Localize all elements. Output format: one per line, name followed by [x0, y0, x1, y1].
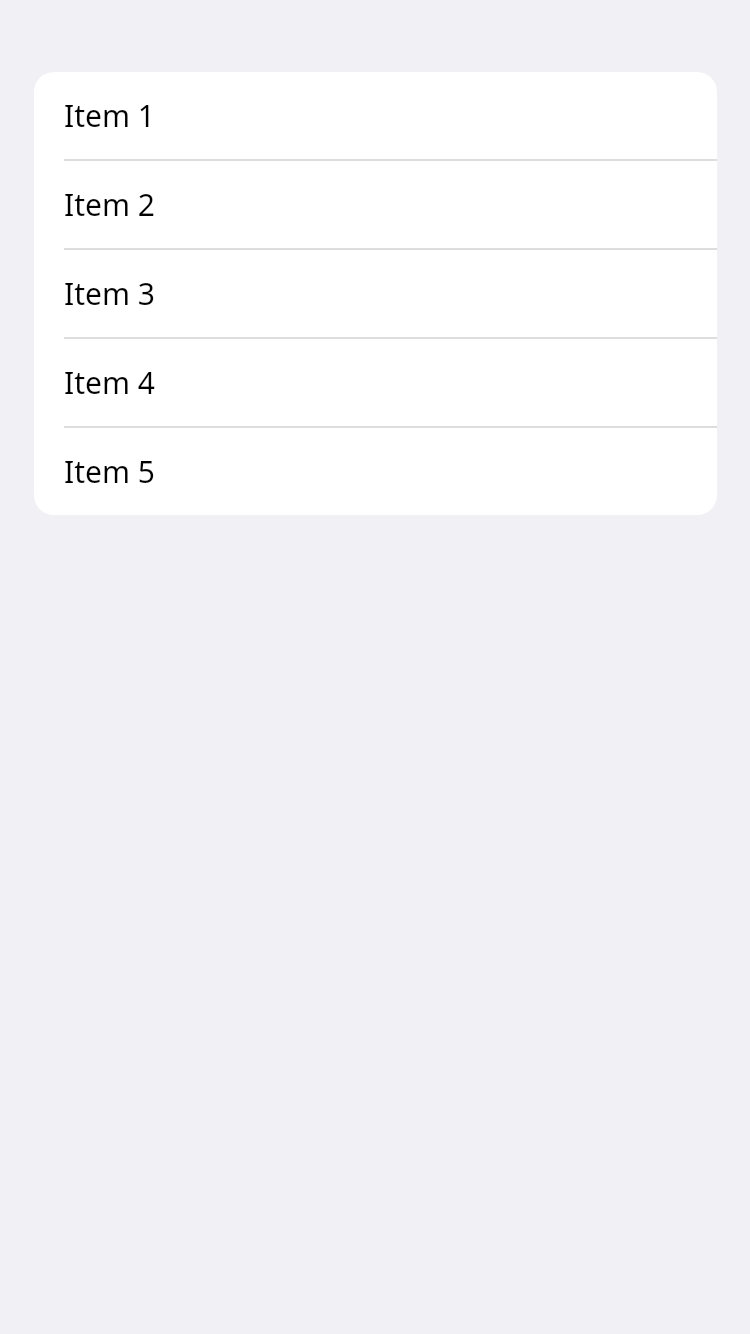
- button[interactable]: Item 5: [34, 428, 717, 515]
- button[interactable]: Item 2: [34, 161, 717, 248]
- staticText: Item 3: [64, 273, 155, 314]
- staticText: Item 4: [64, 362, 155, 403]
- staticText: Item 1: [64, 95, 155, 136]
- staticText: Item 2: [64, 184, 155, 225]
- staticText: Item 5: [64, 451, 155, 492]
- button[interactable]: Item 4: [34, 339, 717, 426]
- button[interactable]: Item 3: [34, 250, 717, 337]
- button[interactable]: Item 1: [34, 72, 717, 159]
